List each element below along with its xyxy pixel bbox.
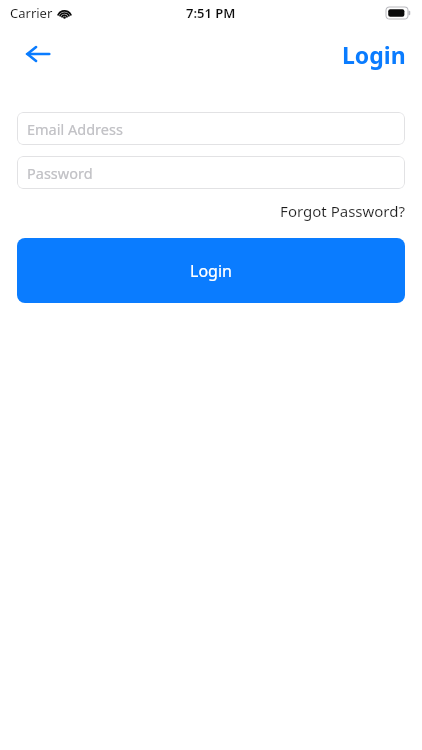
button[interactable]: Login (17, 238, 405, 303)
button[interactable]: Login (342, 39, 406, 70)
button[interactable]: Back (16, 32, 60, 76)
button[interactable]: Forgot Password? (280, 201, 405, 221)
staticText: Password (27, 163, 93, 183)
staticText: Carrier (10, 4, 53, 22)
staticText: Login (190, 260, 232, 282)
staticText: Email Address (27, 119, 123, 139)
button[interactable]: Password (17, 156, 405, 189)
staticText: 7:51 PM (186, 4, 236, 22)
staticText: Forgot Password? (280, 201, 405, 221)
staticText: Login (342, 39, 406, 70)
button[interactable]: Email Address (17, 112, 405, 145)
